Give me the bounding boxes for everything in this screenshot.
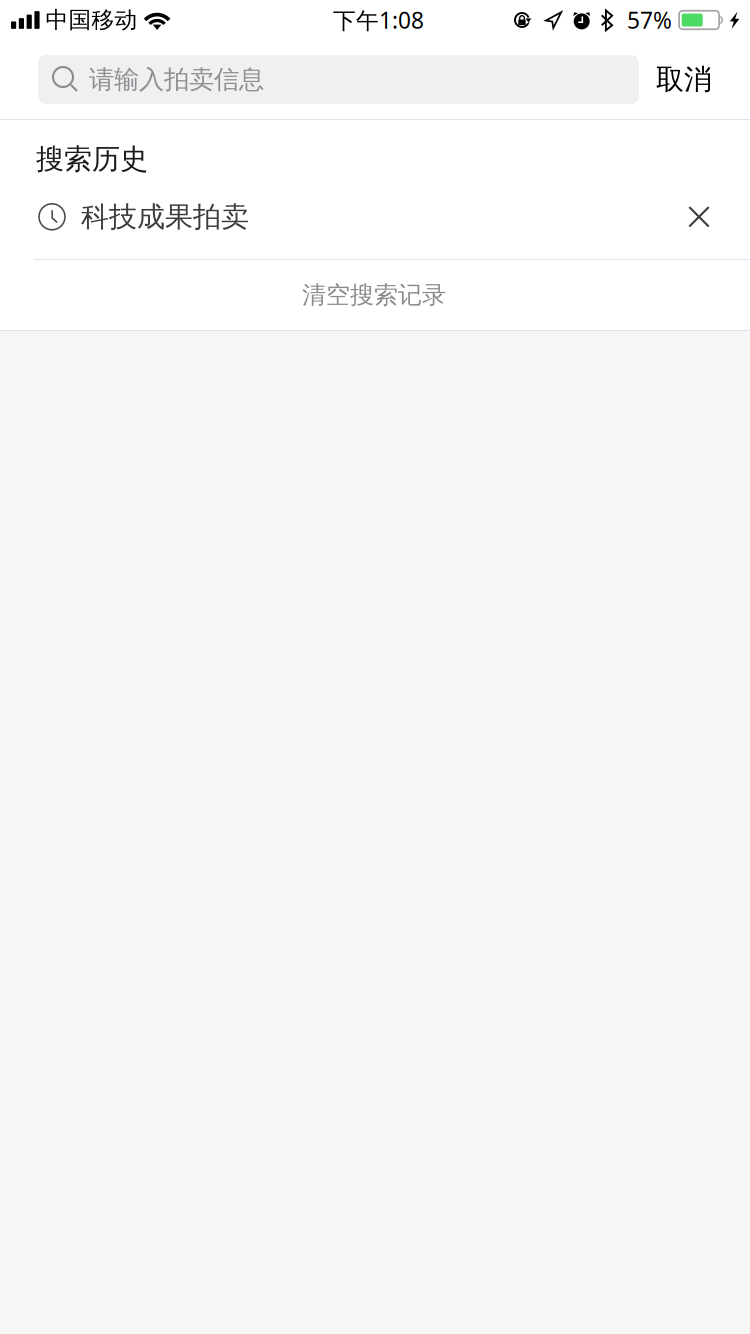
staticText: 下午1:08 [333, 5, 424, 35]
button[interactable]: 清空搜索记录 [0, 260, 750, 330]
staticText: 清空搜索记录 [302, 280, 446, 310]
button[interactable]: 取消 [639, 47, 750, 111]
staticText: 科技成果拍卖 [81, 200, 249, 234]
staticText: 57% [627, 5, 672, 35]
staticText: 取消 [656, 62, 712, 97]
staticText: 中国移动 [46, 6, 138, 34]
staticText: 搜索历史 [36, 142, 148, 176]
staticText: 请输入拍卖信息 [89, 64, 264, 95]
button[interactable]: 科技成果拍卖 [0, 190, 750, 259]
